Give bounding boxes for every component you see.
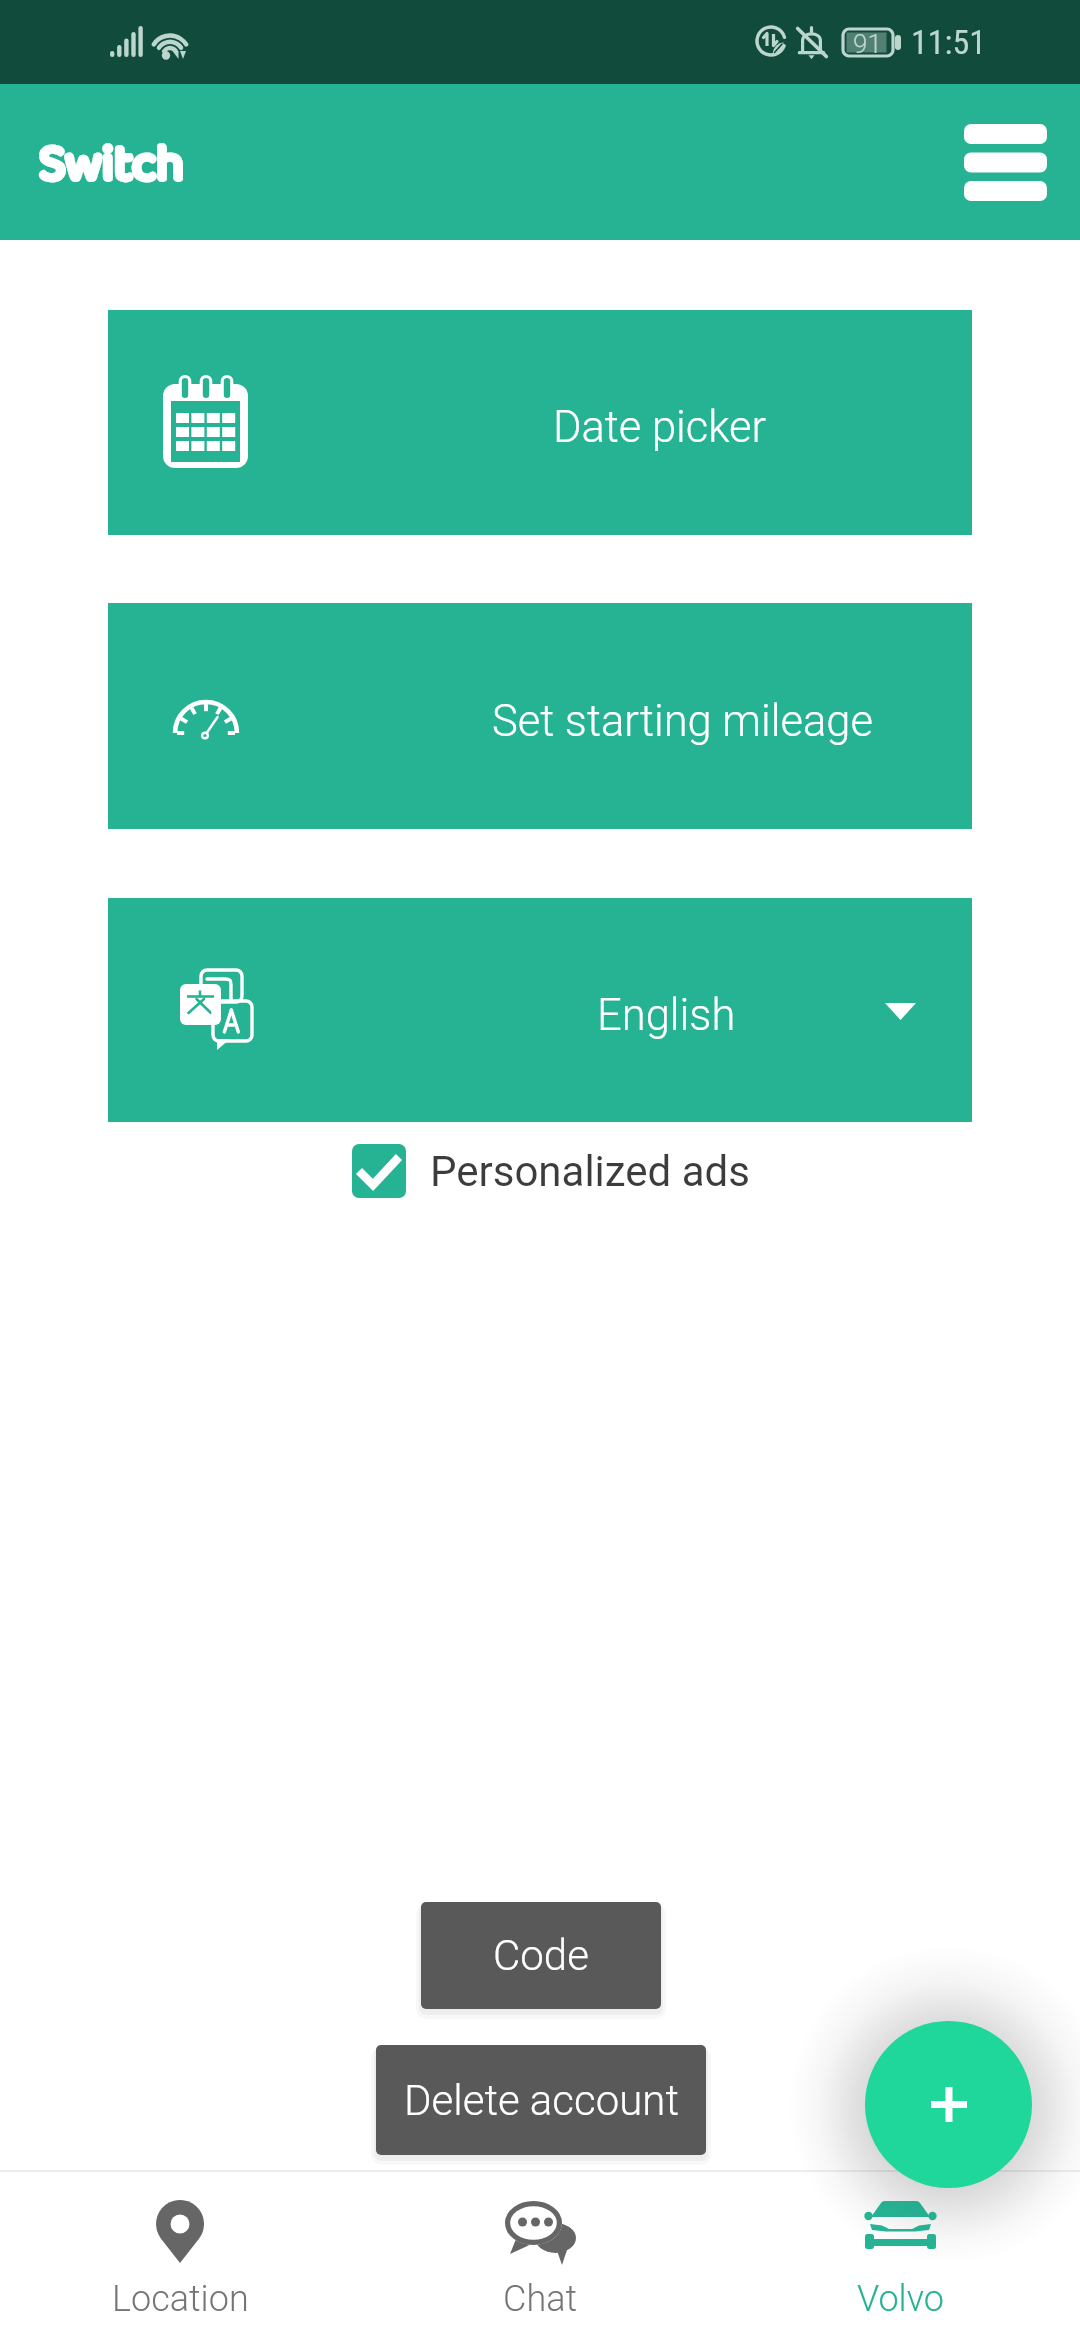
staticText: Location [112, 2278, 249, 2320]
button[interactable]: Personalized ads [352, 1144, 750, 1198]
staticText: Chat [503, 2278, 578, 2320]
button[interactable]: Set starting mileage [108, 603, 972, 829]
button[interactable]: English [108, 898, 972, 1122]
staticText: Date picker [553, 402, 767, 453]
staticText: 11:51 [911, 22, 987, 62]
staticText: Delete account [404, 2076, 679, 2125]
staticText: Set starting mileage [492, 696, 873, 747]
button[interactable]: Volvo [720, 2170, 1080, 2340]
button[interactable]: Date picker [108, 310, 972, 535]
button[interactable]: Delete account [376, 2045, 706, 2155]
staticText: Switch [39, 125, 184, 206]
staticText: 91 [853, 29, 882, 56]
button[interactable]: Add [865, 2021, 1032, 2188]
staticText: Switch [39, 125, 184, 206]
button[interactable]: Location [0, 2170, 360, 2340]
button[interactable]: Code [421, 1902, 661, 2009]
staticText: English [597, 990, 736, 1041]
button[interactable]: Chat [360, 2170, 720, 2340]
button[interactable]: Menu [946, 97, 1065, 227]
staticText: Personalized ads [430, 1147, 750, 1196]
staticText: Volvo [857, 2278, 944, 2320]
staticText: Code [493, 1931, 589, 1980]
